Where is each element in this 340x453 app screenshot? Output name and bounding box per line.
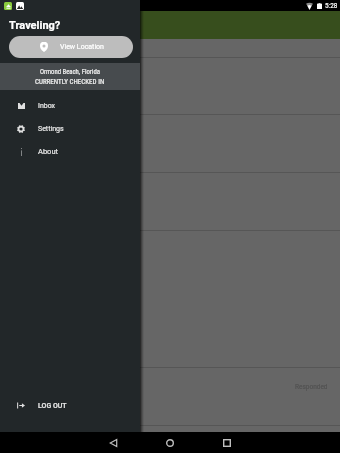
staticText: Settings	[38, 125, 64, 133]
button[interactable]: About	[0, 140, 140, 163]
button[interactable]: Recents	[212, 432, 242, 453]
button[interactable]: Home	[155, 432, 185, 453]
staticText: CURRENTLY CHECKED IN	[35, 78, 105, 86]
staticText: Traveling?	[9, 19, 61, 32]
staticText: About	[38, 147, 58, 156]
staticText: 5:28	[325, 2, 338, 10]
button[interactable]: View Location	[9, 36, 133, 58]
staticText: Ormond Beach, Florida	[40, 68, 100, 76]
staticText: Responded	[295, 383, 328, 391]
button[interactable]: Settings	[0, 117, 140, 140]
staticText: View Location	[60, 43, 104, 51]
staticText: Inbox	[38, 102, 56, 110]
button[interactable]: Inbox	[0, 94, 140, 117]
button[interactable]: Back	[98, 432, 128, 453]
button[interactable]: LOG OUT	[0, 394, 140, 417]
staticText: LOG OUT	[38, 402, 67, 410]
